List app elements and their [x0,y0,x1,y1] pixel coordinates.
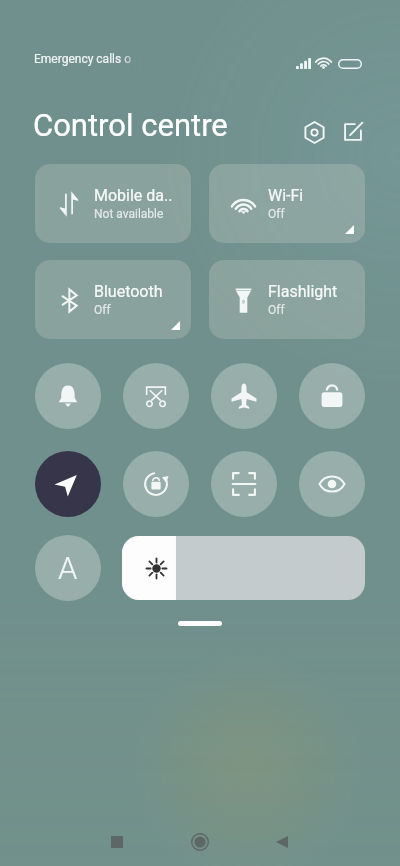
staticText: Emergency calls o [34,52,131,66]
staticText: Wi-Fi [268,186,304,205]
button[interactable]: Back [258,818,306,866]
staticText: A [58,550,78,586]
staticText: Not available [94,207,164,221]
staticText: Bluetooth [94,282,163,301]
button[interactable]: Screenshot [123,363,189,429]
staticText: Mobile da.. [94,186,173,205]
button[interactable]: Home [176,818,224,866]
staticText: Off [268,207,285,221]
staticText: Control centre [33,107,228,143]
button[interactable]: Settings [297,115,331,149]
staticText: Off [94,303,111,317]
button[interactable]: Auto brightness [35,535,101,601]
button[interactable]: Brightness [122,536,365,600]
staticText: Off [268,303,285,317]
button[interactable]: Location [35,451,101,517]
button[interactable]: Scan [211,451,277,517]
staticText: Flashlight [268,282,338,301]
button[interactable]: Mobile da.. [35,164,191,243]
button[interactable]: Edit [336,115,370,149]
button[interactable]: Lock [299,363,365,429]
button[interactable]: Recents [93,818,141,866]
button[interactable]: Wi-Fi [209,164,365,243]
button[interactable]: Airplane mode [211,363,277,429]
button[interactable]: Notifications [35,363,101,429]
button[interactable]: Reading mode [299,451,365,517]
button[interactable]: Flashlight [209,260,365,339]
button[interactable]: Bluetooth [35,260,191,339]
button[interactable]: Auto rotate [123,451,189,517]
